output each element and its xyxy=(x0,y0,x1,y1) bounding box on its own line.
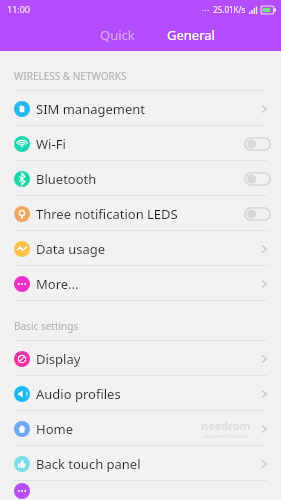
staticText: Quick xyxy=(100,26,135,44)
staticText: Wi-Fi xyxy=(36,135,66,153)
button[interactable]: Display xyxy=(0,341,281,376)
staticText: Display xyxy=(36,350,81,368)
staticText: Bluetooth xyxy=(36,170,97,188)
staticText: Audio profiles xyxy=(36,385,121,403)
button[interactable]: Back touch panel xyxy=(0,446,281,481)
button[interactable]: Wi-Fi xyxy=(0,126,281,161)
staticText: SIM management xyxy=(36,100,146,118)
staticText: General xyxy=(167,26,215,44)
button[interactable]: Data usage xyxy=(0,231,281,266)
button[interactable]: Three notification LEDS xyxy=(0,196,281,231)
staticText: Back touch panel xyxy=(36,455,141,473)
button[interactable]: Audio profiles xyxy=(0,376,281,411)
staticText: Home xyxy=(36,420,73,438)
button[interactable]: Home xyxy=(0,411,281,446)
button[interactable]: Quick xyxy=(81,18,154,51)
button[interactable]: General xyxy=(154,18,227,51)
button[interactable]: More... xyxy=(0,266,281,301)
staticText: Basic settings xyxy=(14,319,79,333)
staticText: ⋯ 25.01K/s xyxy=(201,4,246,15)
button[interactable]: Security settings xyxy=(0,481,281,500)
button[interactable]: Bluetooth xyxy=(0,161,281,196)
staticText: needrom xyxy=(201,418,251,433)
button[interactable]: SIM management xyxy=(0,91,281,126)
staticText: www.needrom.com xyxy=(203,433,249,440)
staticText: Data usage xyxy=(36,240,106,258)
staticText: WIRELESS & NETWORKS xyxy=(14,69,127,83)
staticText: More... xyxy=(36,275,79,293)
staticText: 11:00 xyxy=(7,3,31,15)
staticText: Three notification LEDS xyxy=(36,205,178,223)
